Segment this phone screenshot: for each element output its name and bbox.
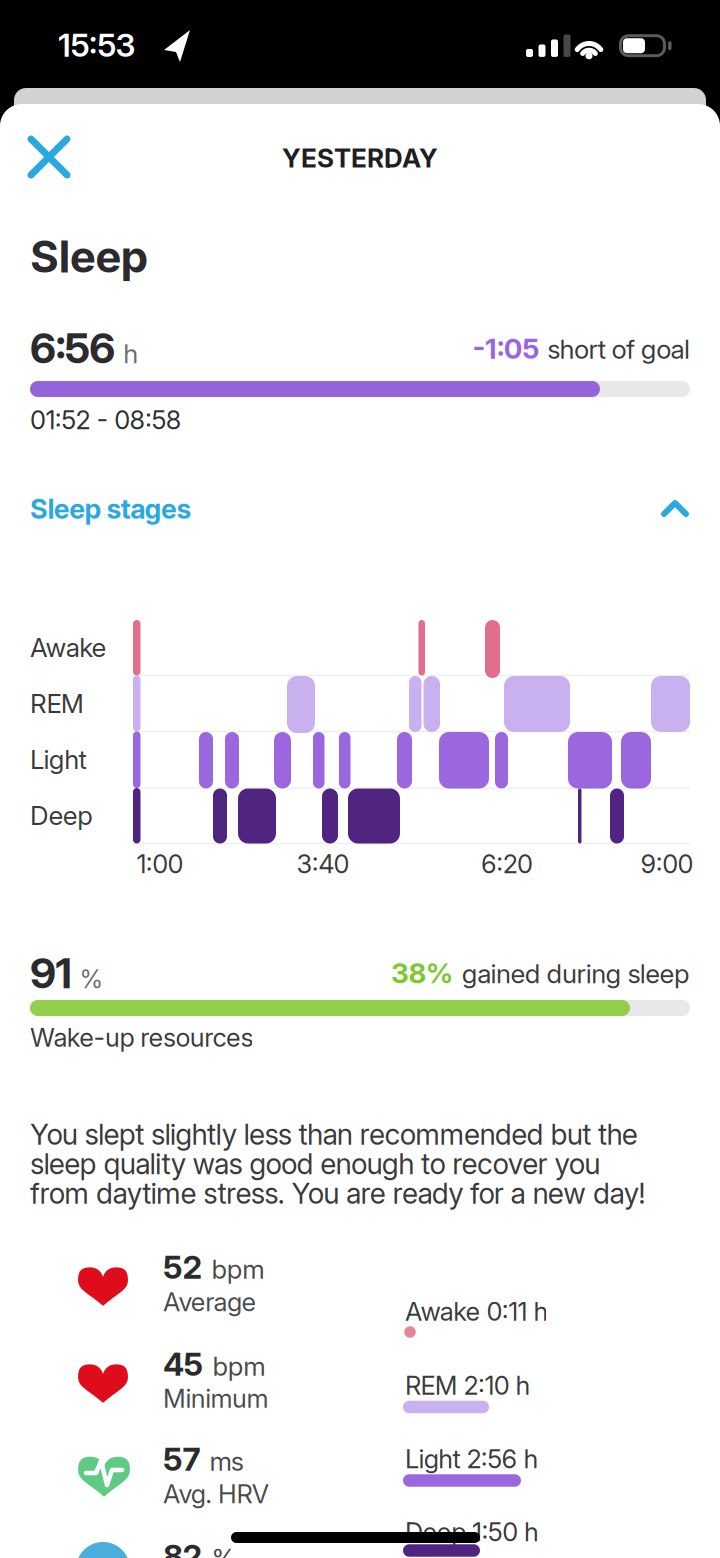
staticText: 9:00 — [640, 849, 694, 879]
staticText: 1:00 — [136, 849, 184, 879]
staticText: REM 2:10 h — [405, 1370, 531, 1401]
staticText: sleep quality was good enough to recover… — [30, 1147, 600, 1181]
staticText: 15:53 — [58, 26, 136, 64]
staticText: short of goal — [547, 333, 690, 365]
staticText: Wake-up resources — [30, 1022, 253, 1053]
staticText: 52 — [163, 1248, 202, 1286]
staticText: ms — [209, 1445, 244, 1477]
staticText: 82 — [163, 1537, 202, 1558]
staticText: Sleep — [30, 230, 149, 283]
staticText: YESTERDAY — [282, 142, 438, 174]
staticText: -1:05 — [473, 332, 539, 365]
staticText: Minimum — [163, 1383, 268, 1414]
staticText: REM — [30, 688, 84, 719]
staticText: bpm — [212, 1350, 265, 1382]
staticText: bpm — [211, 1253, 264, 1285]
staticText: gained during sleep — [462, 958, 690, 989]
staticText: % — [79, 964, 103, 994]
staticText: Awake — [30, 632, 107, 663]
staticText: Average — [163, 1287, 256, 1317]
staticText: from daytime stress. You are ready for a… — [30, 1176, 645, 1211]
staticText: % — [211, 1542, 235, 1558]
staticText: 6:20 — [481, 849, 533, 879]
staticText: Deep 1:50 h — [405, 1517, 539, 1547]
staticText: 91 — [30, 948, 71, 998]
staticText: 3:40 — [296, 849, 350, 879]
staticText: 6:56 — [30, 323, 115, 373]
button[interactable]: Sleep stages — [30, 481, 690, 537]
staticText: You slept slightly less than recommended… — [30, 1117, 638, 1152]
staticText: Sleep stages — [30, 493, 191, 525]
staticText: 38% — [391, 956, 454, 990]
staticText: 57 — [163, 1440, 200, 1478]
staticText: Light — [30, 744, 87, 775]
staticText: h — [123, 338, 138, 370]
staticText: Deep — [30, 800, 93, 831]
staticText: Avg. HRV — [163, 1479, 269, 1509]
staticText: 01:52 - 08:58 — [30, 405, 182, 435]
staticText: Light 2:56 h — [405, 1444, 538, 1474]
staticText: 45 — [163, 1345, 203, 1383]
staticText: Awake 0:11 h — [405, 1296, 548, 1327]
button[interactable] — [24, 132, 74, 182]
